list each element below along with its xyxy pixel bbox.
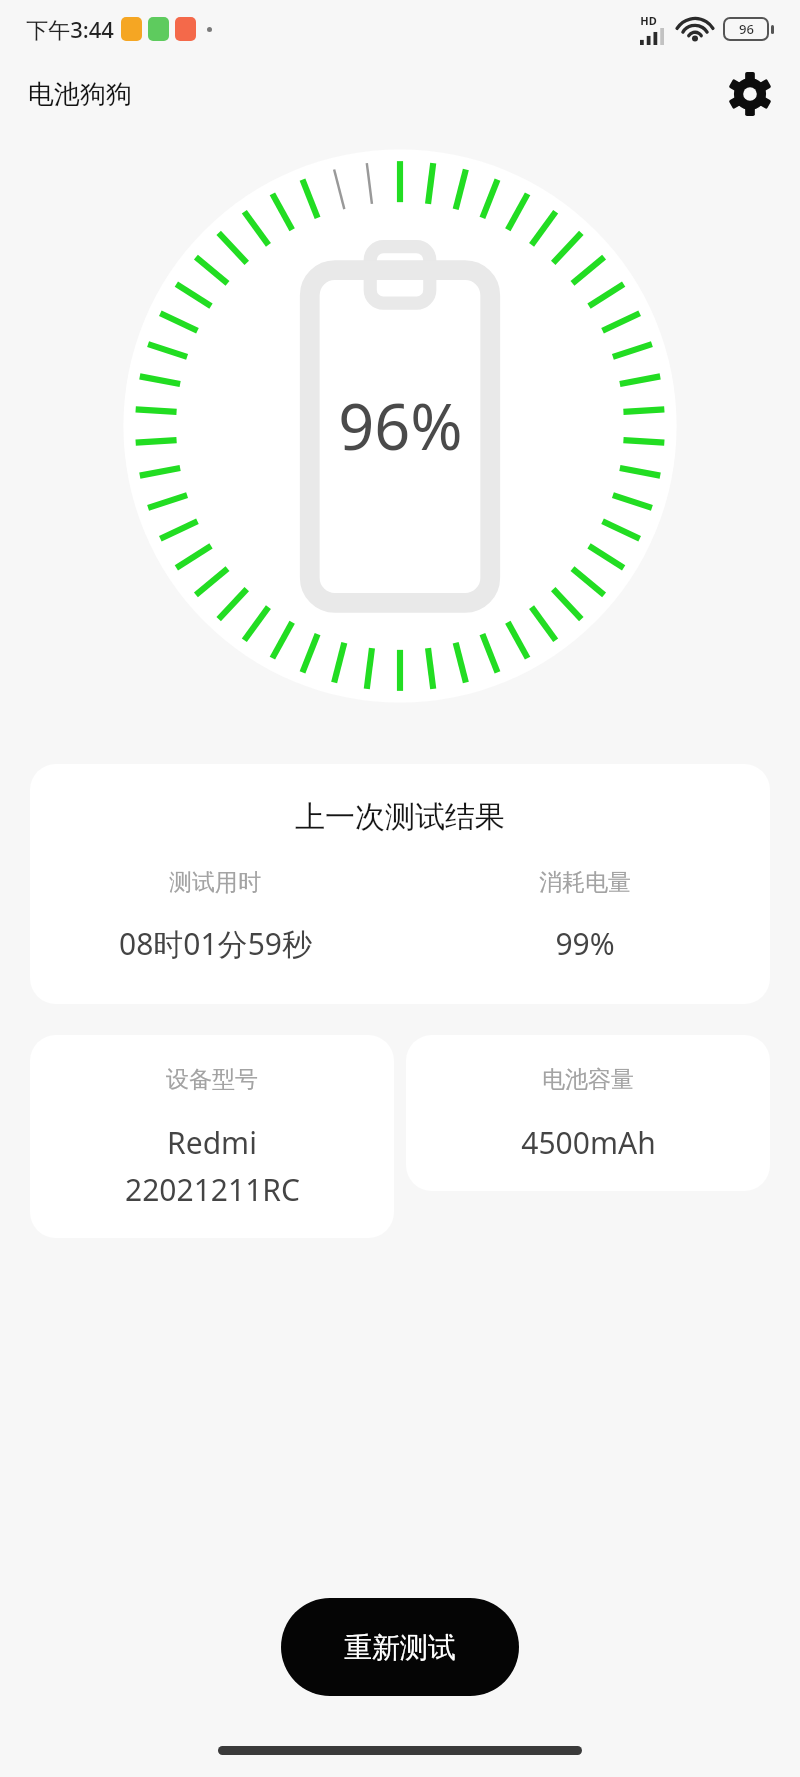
button[interactable]: Settings [722, 66, 778, 122]
staticText: 下午3:44 [26, 14, 114, 44]
staticText: 测试用时 [169, 868, 261, 897]
staticText: 4500mAh [521, 1122, 656, 1163]
staticText: 消耗电量 [539, 868, 631, 897]
staticText: 96 [739, 20, 754, 38]
staticText: 电池狗狗 [28, 78, 132, 111]
staticText: 99% [555, 923, 615, 964]
staticText: 上一次测试结果 [295, 798, 505, 836]
button[interactable]: 电池容量 [406, 1035, 770, 1191]
staticText: 22021211RC [125, 1169, 300, 1210]
staticText: 重新测试 [344, 1630, 456, 1665]
staticText: 08时01分59秒 [119, 923, 312, 964]
button[interactable]: 上一次测试结果 [30, 764, 770, 1004]
staticText: Redmi [167, 1122, 257, 1163]
button[interactable]: 重新测试 [281, 1598, 519, 1696]
staticText: 96% [338, 383, 463, 469]
staticText: 设备型号 [166, 1065, 258, 1094]
staticText: 电池容量 [542, 1065, 634, 1094]
staticText: HD [640, 13, 657, 28]
button[interactable]: 设备型号 [30, 1035, 394, 1238]
